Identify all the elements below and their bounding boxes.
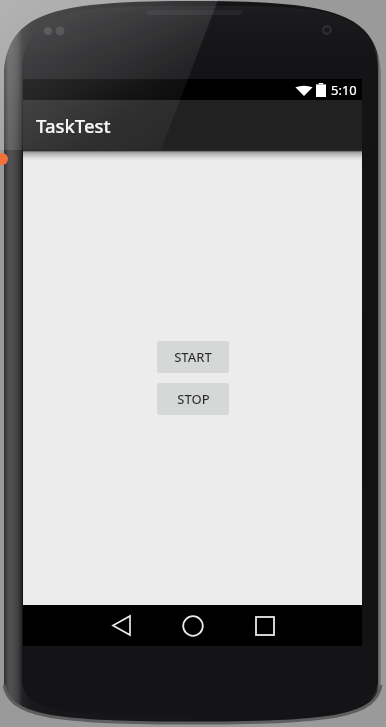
button[interactable]: Home	[182, 605, 204, 646]
staticText: STOP	[177, 390, 210, 408]
button[interactable]: Recents	[254, 605, 276, 646]
staticText: TaskTest	[36, 113, 111, 138]
staticText: 5:10	[331, 81, 357, 99]
staticText: START	[174, 348, 212, 366]
button[interactable]: Back	[110, 605, 132, 646]
button[interactable]: STOP	[157, 383, 229, 415]
button[interactable]: START	[157, 341, 229, 373]
